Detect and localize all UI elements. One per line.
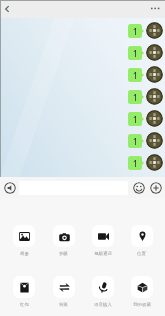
button[interactable]: 1 [128, 46, 142, 60]
button[interactable]: Back [0, 0, 16, 18]
staticText: 1 [133, 158, 138, 169]
button[interactable]: Emoji [133, 182, 145, 194]
staticText: 拍摄 [59, 251, 68, 257]
button[interactable]: 1 [128, 90, 142, 104]
button[interactable]: Voice message [4, 182, 16, 194]
staticText: 相册 [20, 251, 29, 257]
button[interactable]: 转账 [44, 276, 83, 308]
button[interactable]: 我的收藏 [122, 276, 161, 308]
button[interactable]: 1 [128, 24, 142, 38]
button[interactable]: 相册 [4, 225, 44, 257]
staticText: 1 [133, 70, 138, 81]
staticText: 语音输入 [94, 302, 112, 308]
button[interactable]: More options [150, 182, 162, 194]
button[interactable]: 1 [128, 156, 142, 170]
button[interactable]: 红包 [4, 276, 44, 308]
staticText: 1 [133, 114, 138, 125]
button[interactable]: More [145, 0, 165, 18]
button[interactable]: 1 [128, 112, 142, 126]
button[interactable]: 拍摄 [44, 225, 83, 257]
button[interactable]: 视频通话 [83, 225, 122, 257]
button[interactable]: 位置 [122, 225, 161, 257]
staticText: 1 [133, 26, 138, 37]
button[interactable]: 1 [128, 68, 142, 82]
staticText: 视频通话 [94, 251, 112, 257]
button[interactable]: 1 [128, 134, 142, 148]
staticText: 1 [133, 92, 138, 103]
staticText: 位置 [137, 251, 146, 257]
staticText: 转账 [59, 302, 68, 308]
staticText: 1 [133, 48, 138, 59]
button[interactable]: 语音输入 [83, 276, 122, 308]
staticText: 1 [133, 136, 138, 147]
staticText: 红包 [20, 302, 29, 308]
staticText: 我的收藏 [133, 302, 151, 308]
